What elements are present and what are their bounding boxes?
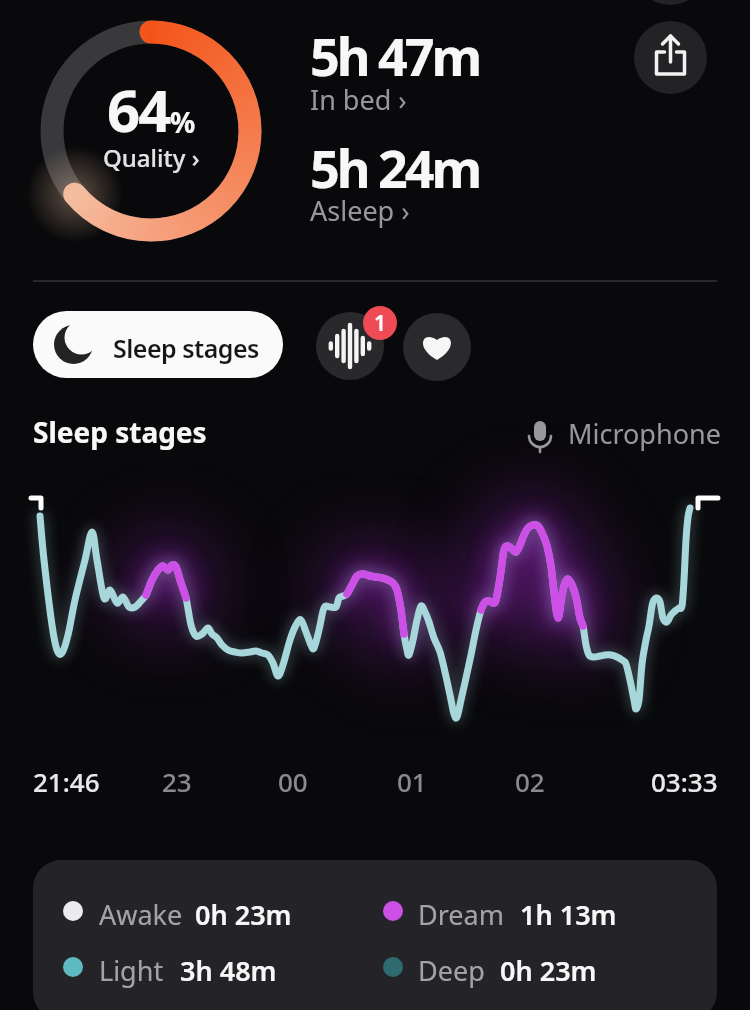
staticText: 0h 23m [195,896,292,933]
staticText: 03:33 [651,764,718,799]
button[interactable] [316,312,384,380]
staticText: Dream [418,896,504,933]
staticText: 21:46 [33,764,100,799]
button[interactable]: Quality › [41,141,261,174]
button[interactable]: Asleep › [310,192,410,229]
button[interactable]: Sleep stages [33,311,283,378]
button[interactable]: In bed › [310,81,407,118]
staticText: 5h 24m [310,132,480,203]
staticText: 0h 23m [500,952,597,989]
staticText: Quality › [103,141,200,174]
staticText: 3h 48m [180,952,277,989]
staticText: 64 [107,70,170,149]
staticText: 23 [162,764,192,799]
button[interactable]: Microphone [526,415,718,455]
staticText: Awake [99,896,183,933]
staticText: Sleep stages [113,331,259,365]
staticText: Deep [418,952,485,989]
staticText: 1h 13m [520,896,617,933]
staticText: Light [99,952,164,989]
staticText: 1 [374,309,387,338]
button[interactable] [403,313,471,381]
staticText: Microphone [568,415,721,452]
staticText: 00 [278,764,308,799]
staticText: 01 [397,764,427,799]
staticText: 5h 47m [310,20,480,91]
staticText: Sleep stages [33,413,207,451]
button[interactable] [634,21,707,94]
staticText: 02 [515,764,545,799]
staticText: In bed › [310,81,407,118]
staticText: % [170,103,196,141]
staticText: Asleep › [310,192,410,229]
